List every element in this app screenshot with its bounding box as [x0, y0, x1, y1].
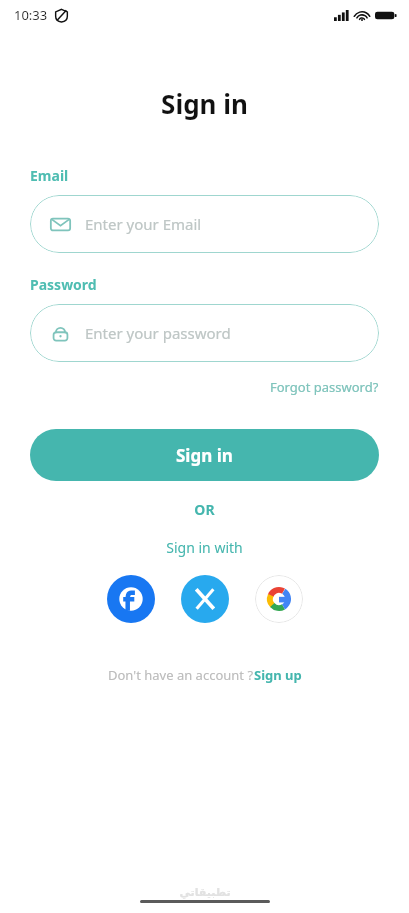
- button[interactable]: Sign in with Google: [255, 575, 303, 623]
- button[interactable]: Sign in with X: [181, 575, 229, 623]
- staticText: Email: [30, 166, 69, 185]
- button[interactable]: Enter your Email: [30, 195, 379, 253]
- staticText: 10:33: [14, 6, 48, 24]
- staticText: Forgot password?: [270, 378, 379, 396]
- button[interactable]: Sign up: [254, 666, 302, 684]
- staticText: Don't have an account ?: [108, 666, 254, 684]
- staticText: OR: [0, 500, 409, 519]
- staticText: تطبيقاتي: [179, 886, 231, 899]
- button[interactable]: Sign in with Facebook: [107, 575, 155, 623]
- button[interactable]: Forgot password?: [270, 376, 409, 398]
- button[interactable]: Enter your password: [30, 304, 379, 362]
- staticText: Enter your Email: [85, 214, 202, 234]
- staticText: Enter your password: [85, 323, 231, 343]
- staticText: Sign in: [176, 444, 233, 467]
- staticText: Sign in with: [0, 538, 409, 557]
- button[interactable]: Sign in: [30, 429, 379, 481]
- staticText: Sign up: [254, 666, 302, 684]
- staticText: Password: [30, 275, 97, 294]
- staticText: Sign in: [0, 86, 409, 121]
